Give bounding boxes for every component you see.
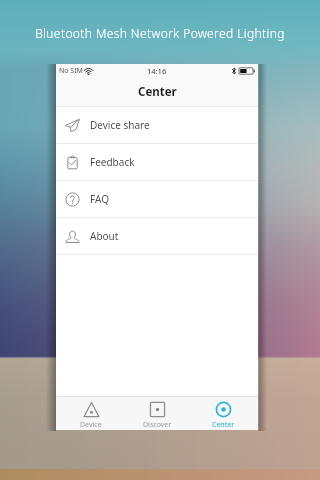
staticText: 14:16 — [147, 66, 167, 76]
staticText: FAQ — [90, 192, 109, 206]
staticText: Discover — [143, 420, 172, 430]
button[interactable]: About — [56, 218, 258, 254]
staticText: About — [90, 229, 119, 243]
button[interactable]: Center — [192, 402, 254, 430]
staticText: Device share — [90, 118, 150, 132]
staticText: Center — [138, 84, 177, 100]
staticText: Bluetooth Mesh Network Powered Lighting — [35, 25, 285, 41]
staticText: Feedback — [90, 155, 135, 169]
button[interactable]: Device share — [56, 107, 258, 143]
button[interactable]: Device — [60, 402, 122, 430]
button[interactable]: FAQ — [56, 181, 258, 217]
staticText: Center — [212, 420, 235, 430]
staticText: No SIM — [59, 66, 83, 76]
button[interactable]: Discover — [126, 402, 188, 430]
button[interactable]: Feedback — [56, 144, 258, 180]
staticText: Device — [80, 420, 102, 430]
